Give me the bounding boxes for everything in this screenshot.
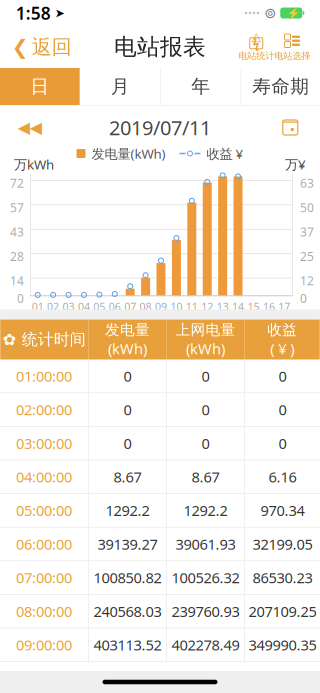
staticText: 17 bbox=[278, 299, 290, 314]
staticText: 01 bbox=[32, 299, 44, 314]
staticText: 日 bbox=[30, 75, 49, 98]
button[interactable]: 日 bbox=[0, 68, 80, 105]
staticText: 6.16 bbox=[268, 467, 296, 487]
staticText: 月 bbox=[111, 75, 130, 98]
button[interactable]: 电站选择 bbox=[274, 26, 320, 68]
staticText: 收益 bbox=[267, 321, 297, 339]
button[interactable]: 上一天 bbox=[0, 109, 60, 145]
staticText: 240568.03 bbox=[93, 601, 161, 621]
button[interactable]: 选择日期 bbox=[260, 109, 320, 145]
staticText: 63 bbox=[300, 175, 314, 191]
staticText: 03 bbox=[62, 299, 74, 314]
staticText: 06:00:00 bbox=[16, 534, 72, 554]
staticText: ( ¥ ) bbox=[270, 339, 294, 358]
staticText: 03:00:00 bbox=[16, 433, 72, 453]
staticText: 207109.25 bbox=[248, 601, 316, 621]
staticText: 02 bbox=[47, 299, 59, 314]
staticText: 32199.05 bbox=[252, 534, 312, 554]
staticText: 07:00:00 bbox=[16, 568, 72, 587]
button[interactable]: △ bbox=[238, 26, 274, 68]
staticText: 39139.27 bbox=[97, 534, 157, 554]
staticText: 28 bbox=[10, 248, 24, 264]
staticText: 02:00:00 bbox=[16, 400, 72, 419]
staticText: ◀◀ bbox=[18, 118, 42, 137]
staticText: △ bbox=[252, 29, 261, 43]
staticText: ⊚ bbox=[264, 5, 276, 21]
staticText: 1292.2 bbox=[184, 501, 228, 520]
staticText: 72 bbox=[10, 175, 24, 191]
staticText: 04:00:00 bbox=[16, 467, 72, 487]
staticText: 39061.93 bbox=[176, 534, 236, 554]
staticText: 08 bbox=[140, 299, 152, 314]
staticText: 1292.2 bbox=[105, 501, 149, 520]
staticText: 349990.35 bbox=[248, 635, 316, 655]
staticText: 上网电量 bbox=[175, 321, 235, 339]
staticText: 0 bbox=[278, 400, 286, 419]
staticText: 15 bbox=[247, 299, 259, 314]
staticText: 年 bbox=[191, 75, 210, 98]
staticText: 发电量 bbox=[105, 321, 150, 339]
staticText: 12 bbox=[201, 299, 213, 314]
staticText: 43 bbox=[10, 224, 24, 240]
staticText: 0 bbox=[202, 433, 210, 453]
staticText: 2019/07/11 bbox=[109, 114, 211, 141]
button[interactable]: 寿命期 bbox=[241, 68, 320, 105]
staticText: (kWh) bbox=[186, 339, 225, 358]
staticText: 05 bbox=[93, 299, 105, 314]
staticText: ϟ bbox=[253, 35, 260, 51]
staticText: 09 bbox=[155, 299, 167, 314]
staticText: 86530.23 bbox=[252, 568, 312, 587]
staticText: 10 bbox=[170, 299, 182, 314]
staticText: 57 bbox=[10, 199, 24, 215]
button[interactable]: 月 bbox=[80, 68, 160, 105]
staticText: 37 bbox=[300, 224, 314, 240]
staticText: 万kWh bbox=[14, 155, 54, 173]
staticText: ❮ bbox=[12, 36, 29, 58]
staticText: 电站统计 bbox=[238, 50, 274, 62]
staticText: 0 bbox=[202, 366, 210, 386]
staticText: 0 bbox=[202, 400, 210, 419]
staticText: 970.34 bbox=[260, 501, 304, 520]
staticText: 16 bbox=[263, 299, 275, 314]
staticText: 万¥ bbox=[285, 155, 306, 173]
staticText: 0 bbox=[300, 290, 307, 306]
staticText: 1:58 bbox=[16, 1, 51, 24]
staticText: 发电量(kWh) bbox=[91, 145, 165, 162]
staticText: 100850.82 bbox=[93, 568, 161, 587]
staticText: 08:00:00 bbox=[16, 601, 72, 621]
staticText: 25 bbox=[300, 248, 314, 264]
staticText: 01:00:00 bbox=[16, 366, 72, 386]
staticText: ➤ bbox=[51, 6, 65, 20]
staticText: 返回 bbox=[32, 35, 72, 59]
staticText: 收益 ¥ bbox=[206, 145, 243, 162]
staticText: ⚡ bbox=[287, 7, 300, 19]
button[interactable]: 年 bbox=[161, 68, 241, 105]
staticText: 0 bbox=[123, 433, 131, 453]
staticText: 50 bbox=[300, 199, 314, 215]
staticText: 统计时间 bbox=[22, 330, 86, 349]
staticText: 09:00:00 bbox=[16, 635, 72, 655]
staticText: 14 bbox=[10, 273, 24, 289]
staticText: 8.67 bbox=[113, 467, 141, 487]
staticText: 14 bbox=[232, 299, 244, 314]
staticText: 0 bbox=[123, 366, 131, 386]
staticText: 06 bbox=[109, 299, 121, 314]
staticText: 13 bbox=[217, 299, 229, 314]
button[interactable]: ❮ bbox=[0, 26, 84, 68]
staticText: 05:00:00 bbox=[16, 501, 72, 520]
staticText: 04 bbox=[78, 299, 90, 314]
staticText: 0 bbox=[123, 400, 131, 419]
staticText: 寿命期 bbox=[252, 75, 309, 98]
staticText: (kWh) bbox=[108, 339, 147, 358]
staticText: 0 bbox=[17, 290, 24, 306]
staticText: 电站报表 bbox=[114, 33, 206, 61]
staticText: 07 bbox=[124, 299, 136, 314]
staticText: 12 bbox=[300, 273, 314, 289]
staticText: 239760.93 bbox=[172, 601, 240, 621]
staticText: 0 bbox=[278, 366, 286, 386]
staticText: 402278.49 bbox=[172, 635, 240, 655]
staticText: 11 bbox=[186, 299, 198, 314]
staticText: ✿ bbox=[3, 330, 16, 349]
staticText: 电站选择 bbox=[274, 50, 310, 62]
staticText: 0 bbox=[278, 433, 286, 453]
